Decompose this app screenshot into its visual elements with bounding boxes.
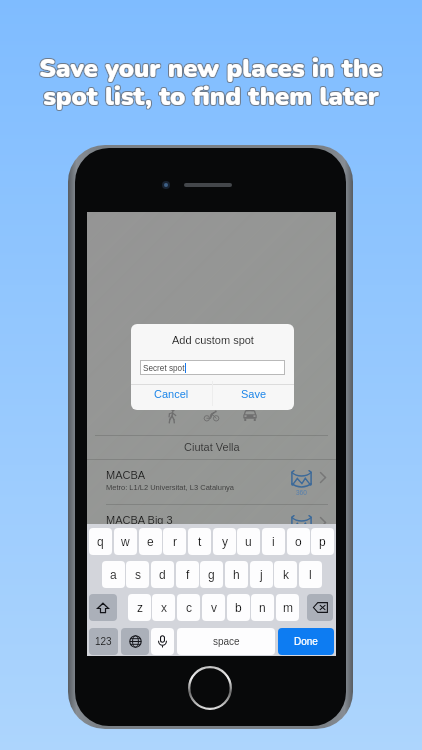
button[interactable]: n: [251, 594, 274, 621]
button[interactable]: m: [276, 594, 299, 621]
staticText: t: [198, 535, 202, 548]
button[interactable]: Driving: [243, 410, 257, 421]
button[interactable]: 123: [89, 628, 118, 655]
staticText: Save: [241, 388, 267, 400]
staticText: Metro: L1/L2 Universitat, L3 Catalunya: [106, 483, 234, 491]
staticText: n: [259, 601, 266, 614]
button[interactable]: x: [152, 594, 175, 621]
button[interactable]: g: [200, 561, 223, 588]
staticText: 360: [296, 489, 307, 496]
staticText: m: [283, 601, 293, 614]
staticText: space: [213, 636, 240, 647]
button[interactable]: Shift: [89, 594, 117, 621]
button[interactable]: Cycling: [204, 410, 219, 421]
staticText: Secret spot: [143, 364, 185, 373]
staticText: l: [309, 568, 312, 581]
staticText: a: [110, 568, 117, 581]
staticText: j: [260, 568, 263, 581]
staticText: Done: [294, 636, 318, 647]
staticText: f: [186, 568, 190, 581]
staticText: Cancel: [154, 388, 189, 400]
staticText: z: [137, 601, 143, 614]
button[interactable]: Save: [213, 381, 294, 406]
staticText: q: [97, 535, 104, 548]
staticText: Save your new places in the spot list, t…: [38, 50, 382, 113]
staticText: s: [135, 568, 141, 581]
button[interactable]: h: [225, 561, 248, 588]
button[interactable]: MACBA Big 3: [87, 505, 336, 539]
button[interactable]: v: [202, 594, 225, 621]
button[interactable]: q: [89, 528, 112, 555]
button[interactable]: y: [213, 528, 236, 555]
button[interactable]: s: [126, 561, 149, 588]
staticText: b: [235, 601, 242, 614]
button[interactable]: l: [299, 561, 322, 588]
button[interactable]: Secret spot: [140, 360, 285, 375]
staticText: 360: [296, 534, 307, 541]
staticText: d: [159, 568, 166, 581]
button[interactable]: c: [177, 594, 200, 621]
staticText: Save your new places in the spot list, t…: [40, 52, 384, 115]
staticText: Save your new places in the spot list, t…: [39, 50, 383, 113]
button[interactable]: e: [139, 528, 162, 555]
staticText: w: [121, 535, 130, 548]
button[interactable]: o: [287, 528, 310, 555]
staticText: 123: [95, 636, 112, 647]
staticText: Save your new places in the spot list, t…: [38, 52, 382, 115]
staticText: x: [161, 601, 167, 614]
button[interactable]: j: [250, 561, 273, 588]
button[interactable]: i: [262, 528, 285, 555]
staticText: Save your new places in the spot list, t…: [39, 51, 383, 114]
staticText: p: [319, 535, 326, 548]
button[interactable]: r: [163, 528, 186, 555]
button[interactable]: Next keyboard: [121, 628, 149, 655]
button[interactable]: f: [176, 561, 199, 588]
button[interactable]: MACBA: [87, 460, 336, 504]
staticText: g: [208, 568, 215, 581]
button[interactable]: u: [237, 528, 260, 555]
staticText: i: [272, 535, 275, 548]
button[interactable]: Backspace: [307, 594, 333, 621]
button[interactable]: z: [128, 594, 151, 621]
button[interactable]: Cancel: [131, 381, 212, 406]
button[interactable]: Dictation: [151, 628, 174, 655]
staticText: Save your new places in the spot list, t…: [38, 51, 382, 114]
button[interactable]: Walking: [168, 409, 177, 423]
button[interactable]: b: [227, 594, 250, 621]
staticText: Save your new places in the spot list, t…: [40, 50, 384, 113]
button[interactable]: a: [102, 561, 125, 588]
staticText: k: [283, 568, 289, 581]
staticText: MACBA: [106, 469, 146, 481]
staticText: c: [186, 601, 192, 614]
staticText: Add custom spot: [172, 334, 254, 346]
staticText: u: [245, 535, 252, 548]
button[interactable]: k: [274, 561, 297, 588]
staticText: Save your new places in the spot list, t…: [40, 51, 384, 114]
button[interactable]: Home: [188, 666, 232, 710]
staticText: Ciutat Vella: [184, 441, 240, 453]
staticText: h: [233, 568, 240, 581]
button[interactable]: d: [151, 561, 174, 588]
staticText: Save your new places in the spot list, t…: [39, 52, 383, 115]
staticText: y: [222, 535, 228, 548]
staticText: r: [173, 535, 177, 548]
button[interactable]: t: [188, 528, 211, 555]
button[interactable]: space: [177, 628, 275, 655]
staticText: v: [211, 601, 217, 614]
staticText: o: [295, 535, 302, 548]
staticText: MACBA Big 3: [106, 514, 173, 526]
button[interactable]: Done: [278, 628, 334, 655]
button[interactable]: p: [311, 528, 334, 555]
button[interactable]: w: [114, 528, 137, 555]
staticText: e: [147, 535, 154, 548]
